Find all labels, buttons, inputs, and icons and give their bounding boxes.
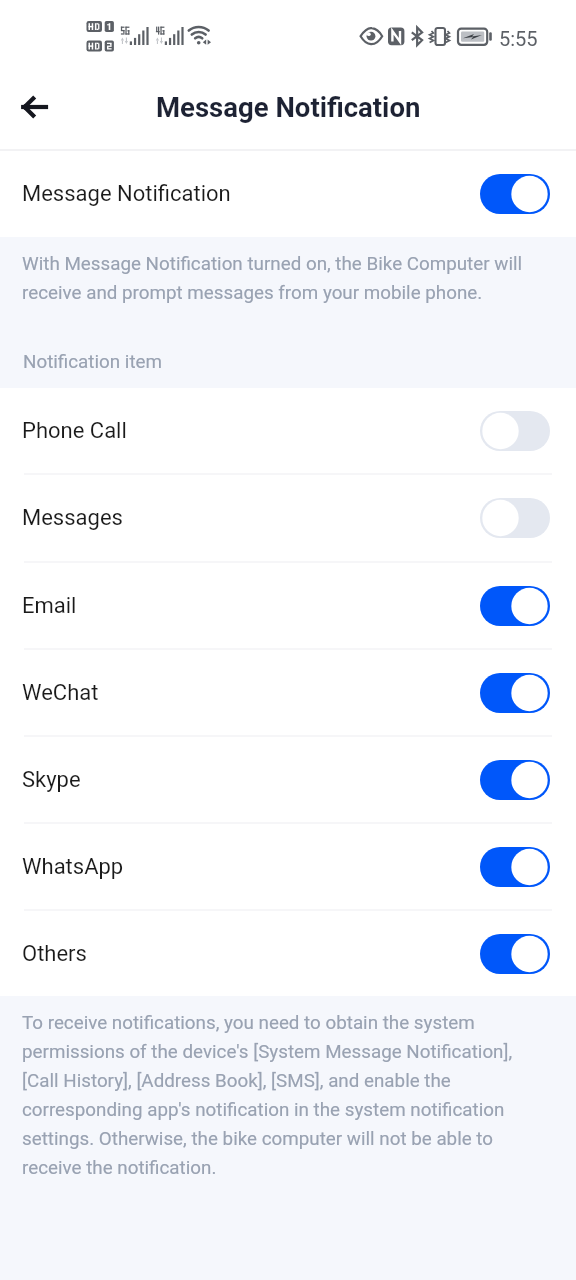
button[interactable]: Back (8, 84, 62, 138)
staticText: WeChat (22, 680, 99, 706)
staticText: Phone Call (22, 418, 127, 444)
button[interactable]: Skype (0, 737, 576, 822)
staticText: Message Notification (156, 91, 421, 123)
button[interactable]: Enable Messages (480, 498, 550, 538)
staticText: Notification item (23, 351, 162, 373)
button[interactable]: Disable WeChat (480, 673, 550, 713)
button[interactable]: WhatsApp (0, 824, 576, 909)
button[interactable]: WeChat (0, 650, 576, 735)
button[interactable]: Phone Call (0, 388, 576, 473)
button[interactable]: Message Notification (0, 151, 576, 237)
button[interactable]: Disable Others (480, 934, 550, 974)
staticText: Skype (22, 767, 81, 793)
staticText: Email (22, 593, 77, 619)
staticText: 5:55 (499, 27, 538, 50)
staticText: With Message Notification turned on, the… (22, 253, 542, 303)
staticText: To receive notifications, you need to ob… (22, 1012, 548, 1178)
staticText: Others (22, 941, 87, 967)
staticText: Message Notification (22, 181, 231, 207)
button[interactable]: Disable Skype (480, 760, 550, 800)
staticText: Messages (22, 505, 123, 531)
button[interactable]: Disable Message Notification (480, 174, 550, 214)
button[interactable]: Disable Email (480, 586, 550, 626)
button[interactable]: Email (0, 563, 576, 648)
button[interactable]: Others (0, 911, 576, 996)
staticText: WhatsApp (22, 854, 124, 880)
button[interactable]: Disable WhatsApp (480, 847, 550, 887)
button[interactable]: Enable Phone Call (480, 411, 550, 451)
button[interactable]: Messages (0, 475, 576, 561)
